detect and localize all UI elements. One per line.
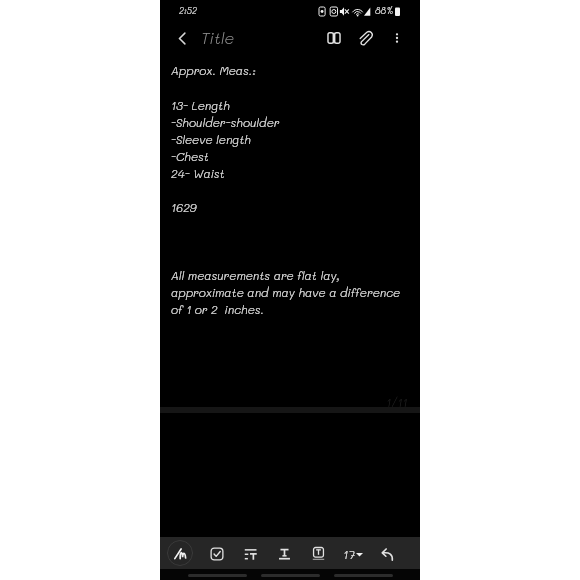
button[interactable]: Navigate up — [165, 21, 199, 55]
button[interactable]: Reading mode — [318, 22, 350, 54]
button[interactable]: Undo — [373, 540, 400, 567]
button[interactable]: Checklist — [203, 540, 230, 567]
button[interactable]: Text format — [271, 540, 298, 567]
staticText: Approx. Meas.: 13- Length -Shoulder-shou… — [171, 63, 420, 317]
staticText: Title — [201, 27, 235, 48]
button[interactable]: Paragraph style — [237, 540, 264, 567]
staticText: 1/11 — [386, 394, 408, 410]
button[interactable]: Recent apps — [188, 571, 247, 579]
button[interactable]: Pen — [167, 540, 193, 566]
button[interactable]: More options — [382, 23, 412, 53]
button[interactable]: Attach — [351, 23, 381, 53]
staticText: 2:52 — [179, 5, 197, 17]
staticText: 17 — [343, 546, 355, 562]
button[interactable]: Font size 17 — [339, 540, 366, 567]
button[interactable]: Home — [261, 571, 320, 579]
button[interactable]: Back — [334, 571, 393, 579]
button[interactable]: Text box — [305, 540, 332, 567]
staticText: 88% — [375, 5, 394, 17]
